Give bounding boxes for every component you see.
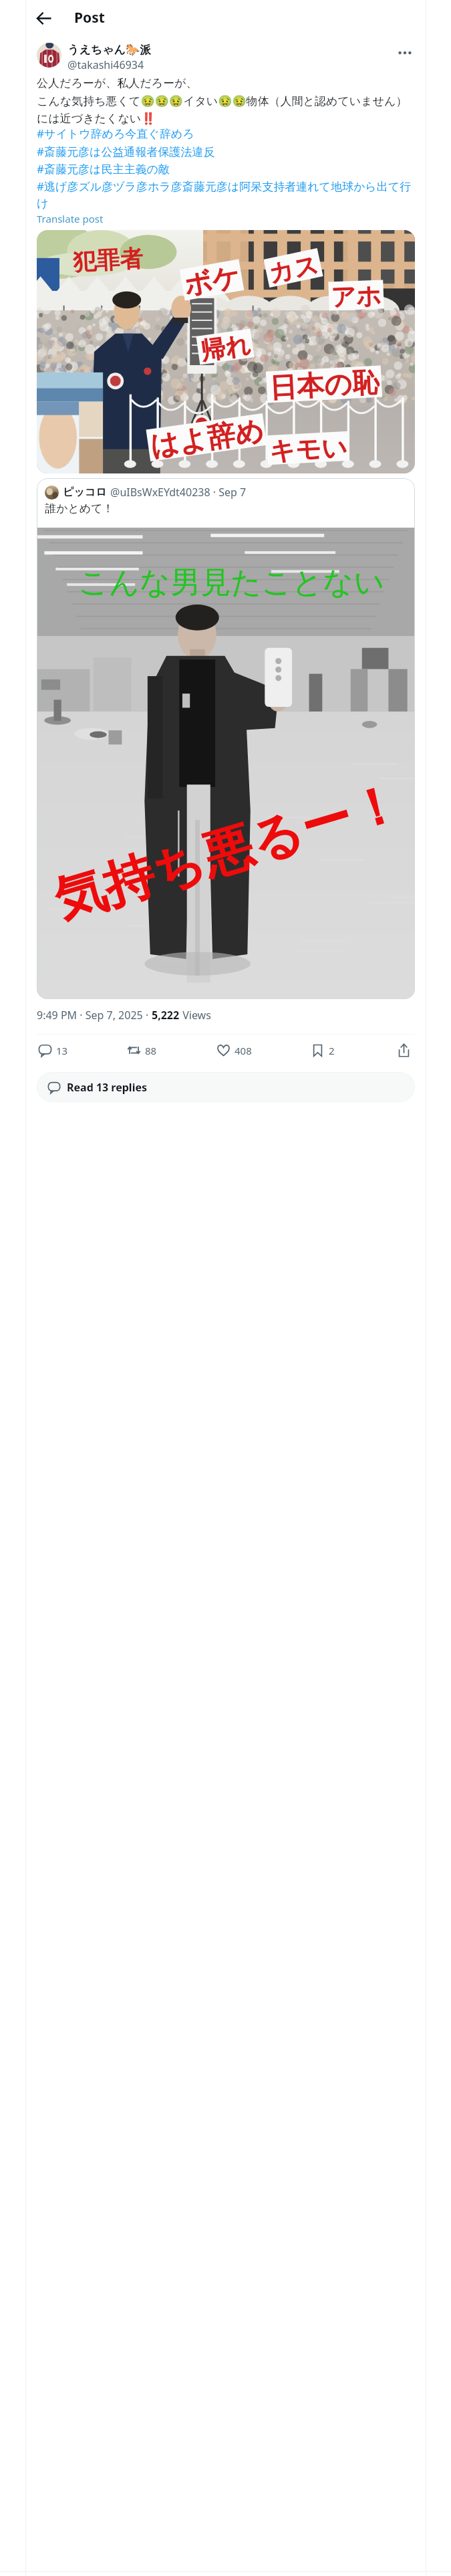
staticText: アホ — [330, 280, 382, 310]
staticText: 408 — [235, 1044, 252, 1057]
staticText: 2 — [329, 1044, 335, 1057]
staticText: 日本の恥 — [269, 366, 380, 403]
staticText: 気持ち悪るー！ — [47, 770, 409, 934]
staticText: #サイトウ辞めろ今直ぐ辞めろ #斎藤元彦は公益通報者保護法違反 #斎藤元彦は民主… — [37, 126, 415, 211]
button[interactable]: Repost — [126, 1041, 158, 1060]
staticText: ピッコロ — [63, 486, 107, 499]
button[interactable]: Read 13 replies — [37, 1072, 415, 1102]
staticText: うえちゃん🐎派 — [67, 43, 152, 57]
staticText: 帰れ — [199, 329, 252, 364]
staticText: こんな男見たことない — [78, 564, 385, 602]
staticText: 5,222 — [152, 1008, 180, 1023]
button[interactable]: More options — [395, 43, 415, 63]
staticText: @uIBsWxEYdt40238 · Sep 7 — [110, 485, 247, 500]
staticText: ボケ — [181, 260, 242, 300]
button[interactable]: Like — [215, 1041, 253, 1060]
staticText: 誰かとめて！ — [45, 502, 114, 516]
staticText: キモい — [269, 431, 348, 465]
button[interactable]: Bookmark — [309, 1041, 336, 1060]
staticText: 88 — [145, 1044, 157, 1057]
button[interactable]: Translate post — [37, 212, 104, 225]
button[interactable]: ピッコロ — [37, 478, 415, 999]
staticText: 9:49 PM · Sep 7, 2025 · — [37, 1008, 152, 1023]
button[interactable]: Reply — [37, 1041, 69, 1060]
button[interactable]: Share — [392, 1039, 415, 1061]
staticText: 公人だろーが、私人だろーが、 こんな気持ち悪くて🤢🤢🤢イタい🤢🤢物体（人間と認め… — [37, 76, 408, 126]
staticText: 13 — [56, 1044, 68, 1057]
staticText: Views — [180, 1008, 211, 1023]
staticText: Post — [74, 8, 105, 27]
staticText: Read 13 replies — [67, 1080, 148, 1095]
staticText: 犯罪者 — [72, 244, 144, 275]
button[interactable]: Back — [31, 6, 55, 30]
staticText: カス — [266, 249, 321, 287]
staticText: @takashi46934 — [67, 58, 144, 72]
staticText: はよ辞め — [148, 413, 266, 461]
